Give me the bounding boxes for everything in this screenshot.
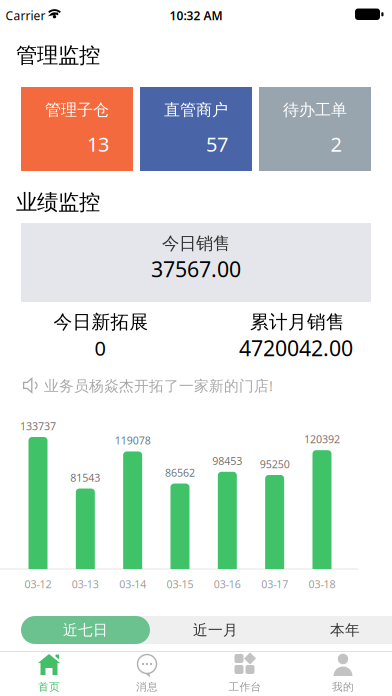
staticText: 03-12 (24, 577, 51, 591)
staticText: 03-15 (166, 577, 193, 591)
button[interactable]: 首页 (0, 652, 98, 696)
staticText: 03-16 (214, 577, 241, 591)
staticText: 98453 (212, 454, 242, 468)
staticText: 57 (206, 131, 228, 157)
staticText: 95250 (260, 457, 290, 471)
staticText: 03-13 (72, 577, 99, 591)
staticText: 13 (87, 131, 109, 157)
button[interactable]: 工作台 (196, 652, 294, 696)
staticText: 86562 (165, 465, 195, 480)
staticText: 我的 (332, 680, 354, 693)
staticText: 近七日 (63, 621, 108, 639)
staticText: 2 (330, 131, 341, 157)
staticText: 消息 (136, 680, 158, 693)
staticText: 管理子仓 (45, 100, 109, 120)
staticText: 本年 (330, 621, 360, 639)
button[interactable]: 待办工单 (259, 87, 371, 171)
staticText: 4720042.00 (239, 334, 353, 362)
staticText: 今日新拓展 (53, 310, 148, 333)
staticText: 03-14 (119, 577, 146, 591)
staticText: 首页 (38, 680, 60, 693)
staticText: 待办工单 (283, 100, 347, 120)
staticText: 37567.00 (151, 255, 241, 283)
staticText: 业务员杨焱杰开拓了一家新的门店! (44, 376, 273, 395)
staticText: 累计月销售 (250, 310, 345, 333)
staticText: 工作台 (228, 680, 261, 693)
button[interactable]: 直管商户 (140, 87, 252, 171)
button[interactable]: 管理子仓 (21, 87, 133, 171)
staticText: 133737 (20, 419, 56, 433)
button[interactable]: 本年 (280, 616, 392, 644)
staticText: Carrier (5, 7, 45, 23)
staticText: 120392 (304, 432, 340, 446)
button[interactable]: 近一月 (151, 616, 280, 644)
staticText: 直管商户 (164, 100, 228, 120)
staticText: 今日销售 (162, 233, 230, 254)
button[interactable]: 消息 (98, 652, 196, 696)
staticText: 业绩监控 (16, 189, 100, 216)
staticText: 03-18 (308, 577, 335, 591)
staticText: 0 (94, 335, 105, 361)
staticText: 管理监控 (16, 42, 100, 69)
staticText: 近一月 (193, 621, 238, 639)
button[interactable]: 我的 (294, 652, 392, 696)
staticText: 03-17 (261, 577, 288, 591)
staticText: 81543 (70, 470, 100, 485)
staticText: 119078 (115, 433, 151, 448)
button[interactable]: 近七日 (21, 616, 150, 644)
staticText: 10:32 AM (169, 7, 222, 23)
